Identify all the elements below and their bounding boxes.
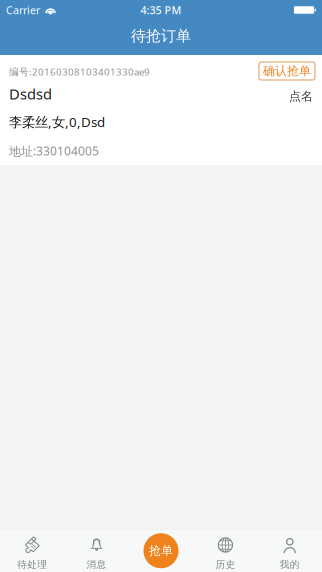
staticText: 地址:330104005 — [9, 143, 99, 159]
staticText: 4:35 PM — [140, 3, 181, 17]
button[interactable]: 历史 — [193, 529, 258, 572]
staticText: Dsdsd — [9, 84, 52, 103]
button[interactable]: 消息 — [64, 529, 129, 572]
staticText: 消息 — [87, 558, 107, 571]
staticText: 点名 — [289, 89, 313, 104]
button[interactable]: 确认抢单 — [259, 62, 315, 80]
button[interactable]: 抢单 — [129, 529, 193, 572]
staticText: 历史 — [215, 558, 235, 571]
staticText: 待处理 — [17, 558, 47, 571]
staticText: 李柔丝,女,0,Dsd — [9, 113, 105, 131]
staticText: 确认抢单 — [263, 64, 311, 78]
staticText: 编号:20160308103401330ae9 — [9, 65, 150, 78]
button[interactable]: 待处理 — [0, 529, 64, 572]
button[interactable]: 我的 — [258, 529, 322, 572]
button[interactable]: 点名 — [289, 89, 313, 104]
staticText: 我的 — [280, 558, 300, 571]
staticText: 抢单 — [149, 543, 173, 558]
staticText: Carrier — [6, 3, 40, 17]
staticText: 待抢订单 — [131, 26, 191, 45]
